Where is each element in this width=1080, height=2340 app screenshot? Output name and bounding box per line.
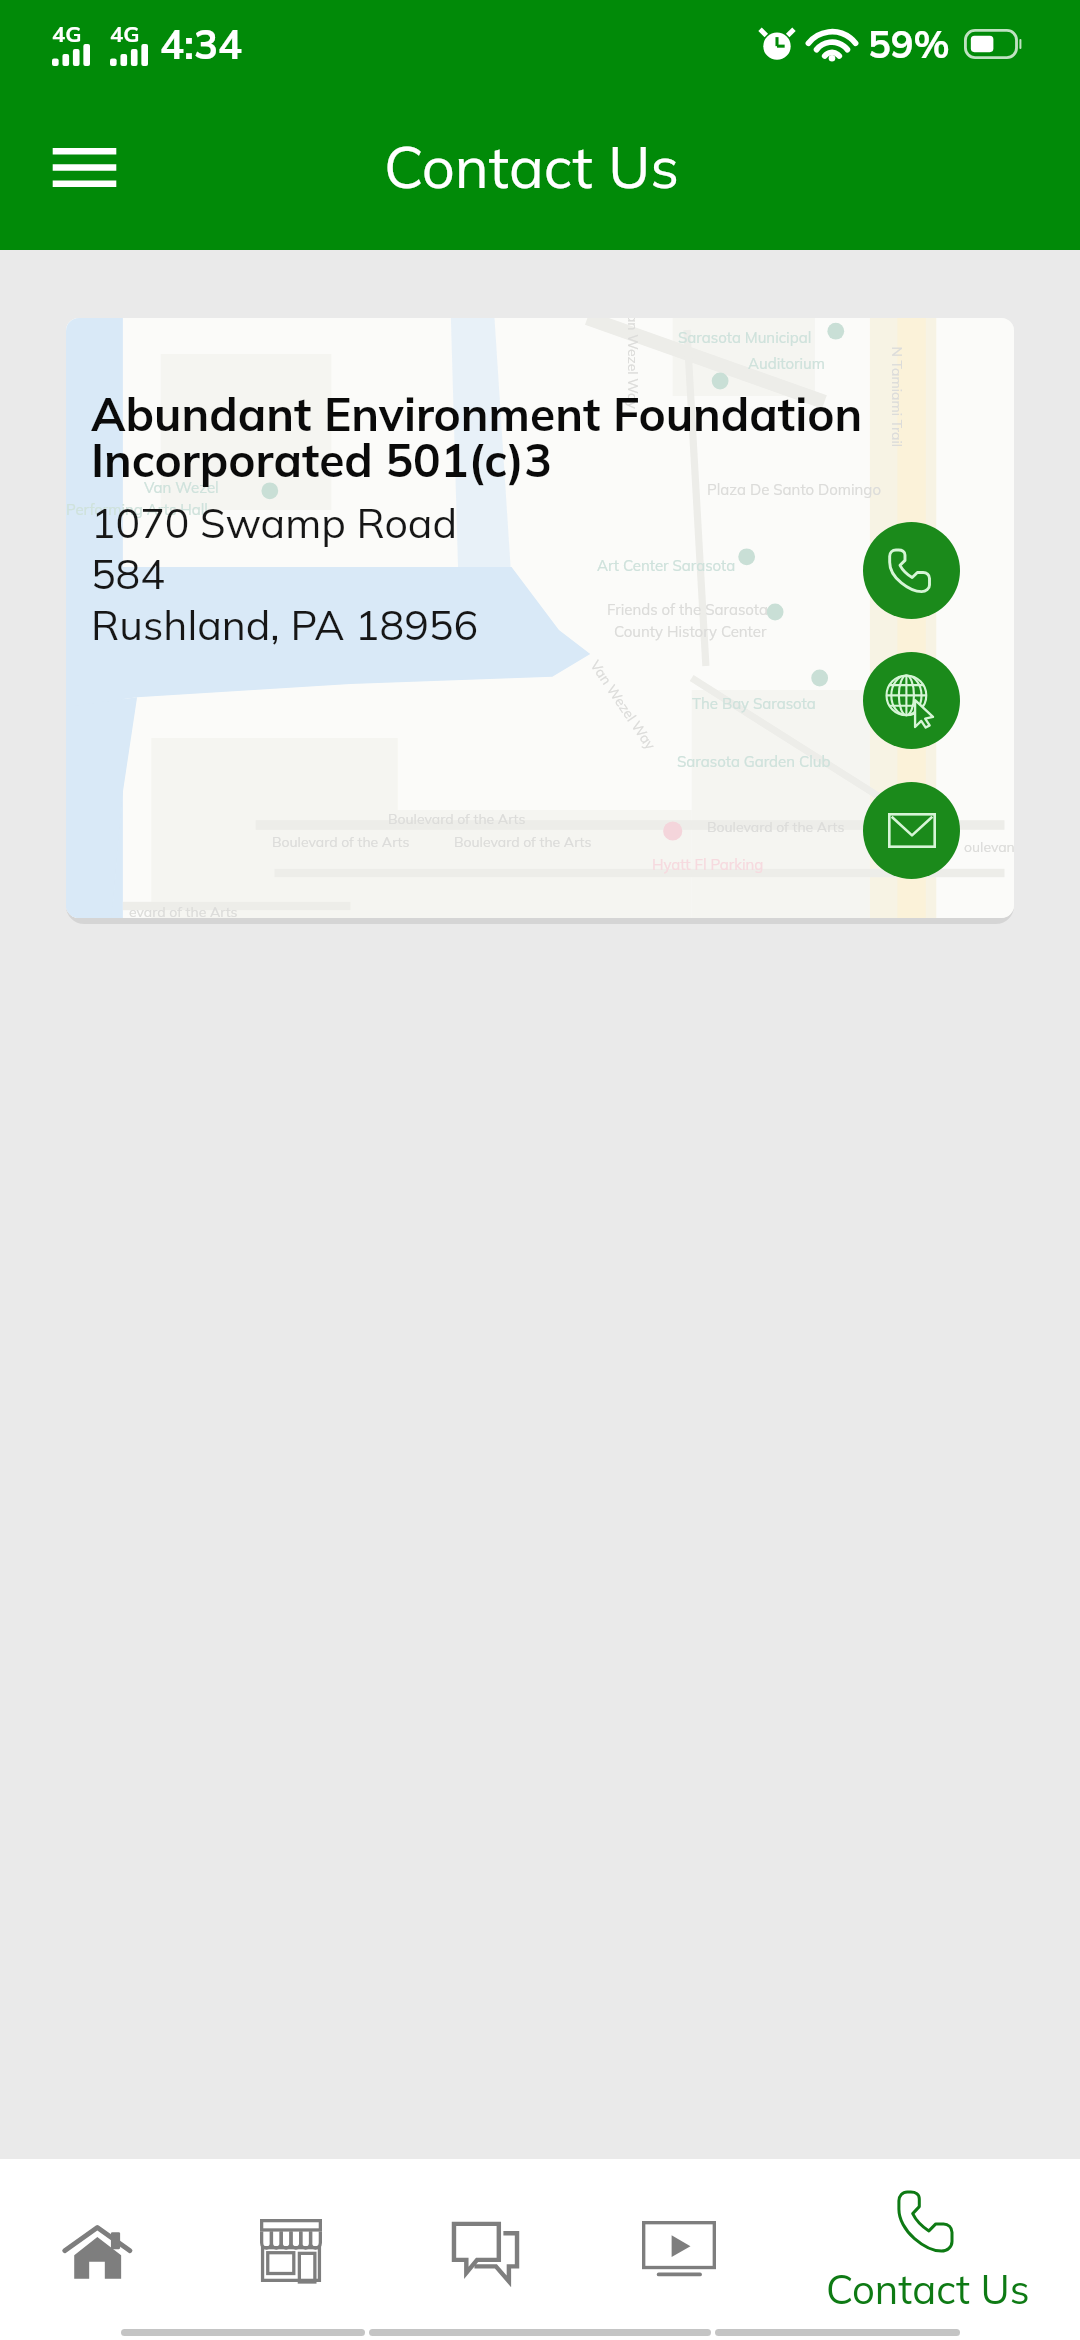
staticText: 4:34 xyxy=(160,19,242,69)
staticText: Sarasota Garden Club xyxy=(677,752,831,771)
staticText: County History Center xyxy=(614,622,767,641)
button[interactable]: Store xyxy=(194,2159,388,2282)
button[interactable]: Open website xyxy=(863,652,960,749)
staticText: The Bay Sarasota xyxy=(692,694,816,713)
staticText: evard of the Arts xyxy=(129,903,238,918)
button[interactable]: Messages xyxy=(388,2159,582,2282)
staticText: Friends of the Sarasota xyxy=(607,600,769,619)
staticText: Van Wezel Way xyxy=(624,318,642,409)
staticText: Performing Arts Hall xyxy=(66,500,208,519)
button[interactable]: Open navigation menu xyxy=(28,112,140,222)
staticText: Boulevard of the Arts xyxy=(388,810,526,828)
staticText: Boulevard of the Arts xyxy=(707,818,845,836)
staticText: Auditorium xyxy=(748,354,825,373)
staticText: Boulevard of the Arts xyxy=(454,833,592,851)
staticText: Boulevard of the Arts xyxy=(272,833,410,851)
staticText: Van Wezel xyxy=(144,478,219,497)
staticText: N Tamiami Trail xyxy=(887,346,905,447)
staticText: Contact Us xyxy=(826,2264,1030,2312)
staticText: 1070 Swamp Road 584 Rushland, PA 18956 xyxy=(91,497,479,650)
staticText: Art Center Sarasota xyxy=(597,556,736,575)
button[interactable]: Home xyxy=(0,2159,194,2282)
staticText: Van Wezel Way xyxy=(586,657,660,753)
staticText: 4G xyxy=(52,20,82,48)
staticText: oulevan xyxy=(964,838,1014,856)
button[interactable]: Contact Us xyxy=(776,2159,1080,2282)
button[interactable]: Call xyxy=(863,522,960,619)
staticText: Hyatt Fl Parking xyxy=(652,855,764,874)
staticText: 4G xyxy=(110,20,140,48)
staticText: Contact Us xyxy=(384,130,680,203)
staticText: Abundant Environment Foundation Incorpor… xyxy=(91,385,863,488)
button[interactable]: Videos xyxy=(582,2159,776,2282)
staticText: Plaza De Santo Domingo xyxy=(707,480,881,499)
staticText: Sarasota Municipal xyxy=(678,328,812,347)
button[interactable]: Send email xyxy=(863,782,960,879)
staticText: 59% xyxy=(868,20,950,68)
